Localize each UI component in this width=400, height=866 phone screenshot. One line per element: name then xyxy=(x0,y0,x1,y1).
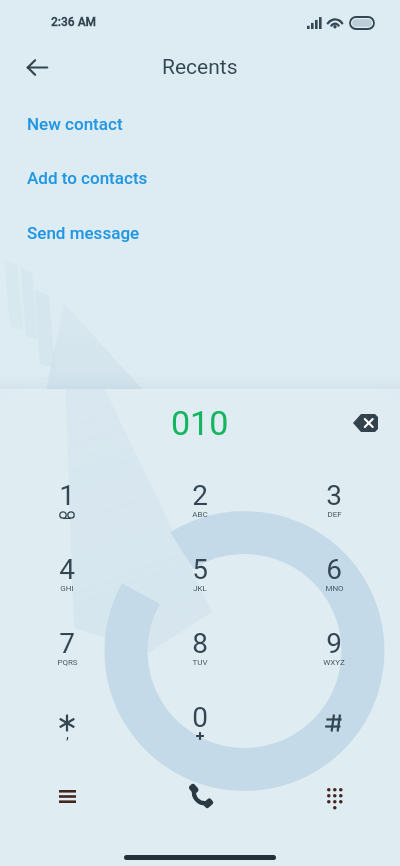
staticText: 4 xyxy=(59,553,75,586)
staticText: TUV xyxy=(192,658,208,667)
button[interactable]: 0 xyxy=(145,701,255,765)
button[interactable]: Back xyxy=(16,46,58,88)
button[interactable]: 7 xyxy=(12,627,122,691)
button[interactable]: New contact xyxy=(0,97,400,151)
staticText: Send message xyxy=(27,223,140,243)
staticText: 3 xyxy=(326,479,342,512)
button[interactable]: Dialpad xyxy=(267,766,400,826)
staticText: Add to contacts xyxy=(27,168,148,188)
staticText: 6 xyxy=(326,553,342,586)
button[interactable] xyxy=(279,701,389,765)
staticText: , xyxy=(66,725,69,743)
button[interactable]: Backspace xyxy=(344,402,386,444)
staticText: PQRS xyxy=(57,658,78,667)
staticText: 010 xyxy=(171,403,229,443)
button[interactable]: 4 xyxy=(12,553,122,617)
button[interactable]: 2 xyxy=(145,479,255,543)
button[interactable]: 1 xyxy=(12,479,122,543)
button[interactable]: Menu xyxy=(0,766,134,826)
staticText: ABC xyxy=(192,510,208,519)
button[interactable]: 3 xyxy=(279,479,389,543)
staticText: MNO xyxy=(325,584,344,593)
button[interactable]: Call xyxy=(134,766,267,826)
staticText: 9 xyxy=(326,627,342,660)
button[interactable]: , xyxy=(12,701,122,765)
staticText: New contact xyxy=(27,114,123,134)
staticText: GHI xyxy=(60,584,74,593)
staticText: 2 xyxy=(192,479,208,512)
button[interactable]: 6 xyxy=(279,553,389,617)
button[interactable]: Add to contacts xyxy=(0,151,400,205)
staticText: 7 xyxy=(59,627,75,660)
staticText: DEF xyxy=(327,510,342,519)
button[interactable]: Send message xyxy=(0,206,400,260)
staticText: 8 xyxy=(192,627,208,660)
staticText: 1 xyxy=(59,479,75,512)
staticText: 5 xyxy=(192,553,208,586)
button[interactable]: 8 xyxy=(145,627,255,691)
staticText: WXYZ xyxy=(323,658,345,667)
button[interactable]: 9 xyxy=(279,627,389,691)
button[interactable]: 5 xyxy=(145,553,255,617)
staticText: JKL xyxy=(193,584,207,593)
staticText: Recents xyxy=(162,55,238,80)
staticText: 2:36 AM xyxy=(51,15,97,29)
staticText: 0 xyxy=(192,701,208,734)
